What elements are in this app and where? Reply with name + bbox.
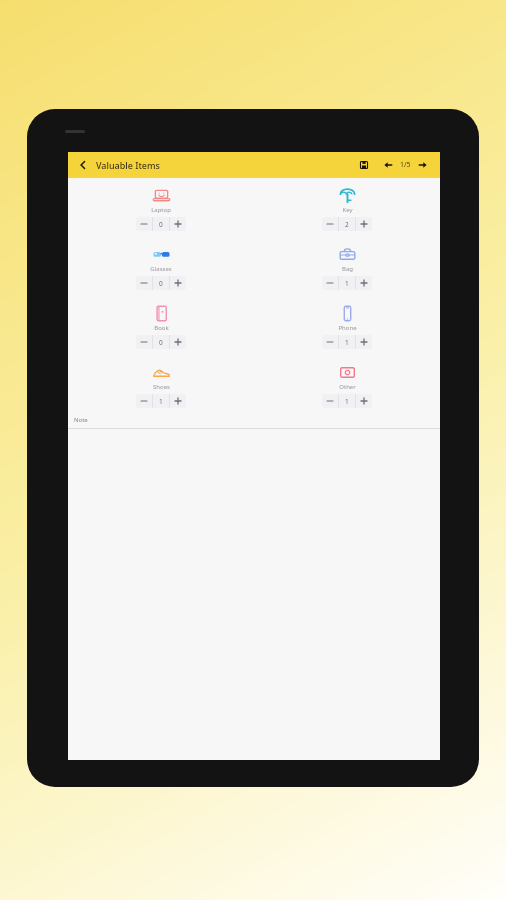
button[interactable]: Decrease Phone [322, 335, 338, 349]
staticText: Note [74, 416, 88, 424]
button[interactable]: Back [76, 158, 90, 172]
button[interactable]: Decrease Glasses [136, 276, 152, 290]
staticText: 0 [159, 338, 163, 347]
button[interactable]: Increase Phone [356, 335, 372, 349]
button[interactable]: Increase Shoes [170, 394, 186, 408]
button[interactable]: Bag [322, 244, 372, 290]
button[interactable]: Book [136, 303, 186, 349]
staticText: 1 [159, 397, 163, 406]
button[interactable]: Other [322, 362, 372, 408]
button[interactable]: Increase Glasses [170, 276, 186, 290]
staticText: 1 [345, 279, 349, 288]
button[interactable]: Save [357, 158, 371, 172]
button[interactable]: Increase Other [356, 394, 372, 408]
button[interactable]: Phone [322, 303, 372, 349]
button[interactable]: Decrease Key [322, 217, 338, 231]
staticText: Glasses [150, 265, 172, 273]
button[interactable]: Decrease Book [136, 335, 152, 349]
staticText: Phone [338, 324, 357, 332]
staticText: Bag [342, 265, 353, 273]
button[interactable]: Increase Laptop [170, 217, 186, 231]
staticText: 2 [345, 220, 349, 229]
button[interactable]: Increase Key [356, 217, 372, 231]
button[interactable]: Decrease Bag [322, 276, 338, 290]
button[interactable]: Key [322, 185, 372, 231]
button[interactable]: Decrease Other [322, 394, 338, 408]
staticText: 1/5 [400, 160, 411, 170]
button[interactable]: Decrease Laptop [136, 217, 152, 231]
staticText: 0 [159, 220, 163, 229]
staticText: 1 [345, 397, 349, 406]
button[interactable]: Increase Book [170, 335, 186, 349]
button[interactable]: Glasses [136, 244, 186, 290]
staticText: Key [342, 206, 353, 214]
staticText: Other [339, 383, 356, 391]
button[interactable]: Shoes [136, 362, 186, 408]
button[interactable]: Previous [381, 158, 395, 172]
staticText: Laptop [151, 206, 171, 214]
button[interactable]: Laptop [136, 185, 186, 231]
staticText: Book [154, 324, 169, 332]
staticText: 1 [345, 338, 349, 347]
staticText: Valuable Items [96, 159, 160, 171]
button[interactable]: Next [416, 158, 430, 172]
button[interactable]: Increase Bag [356, 276, 372, 290]
button[interactable]: Decrease Shoes [136, 394, 152, 408]
staticText: Shoes [153, 383, 170, 391]
staticText: 0 [159, 279, 163, 288]
